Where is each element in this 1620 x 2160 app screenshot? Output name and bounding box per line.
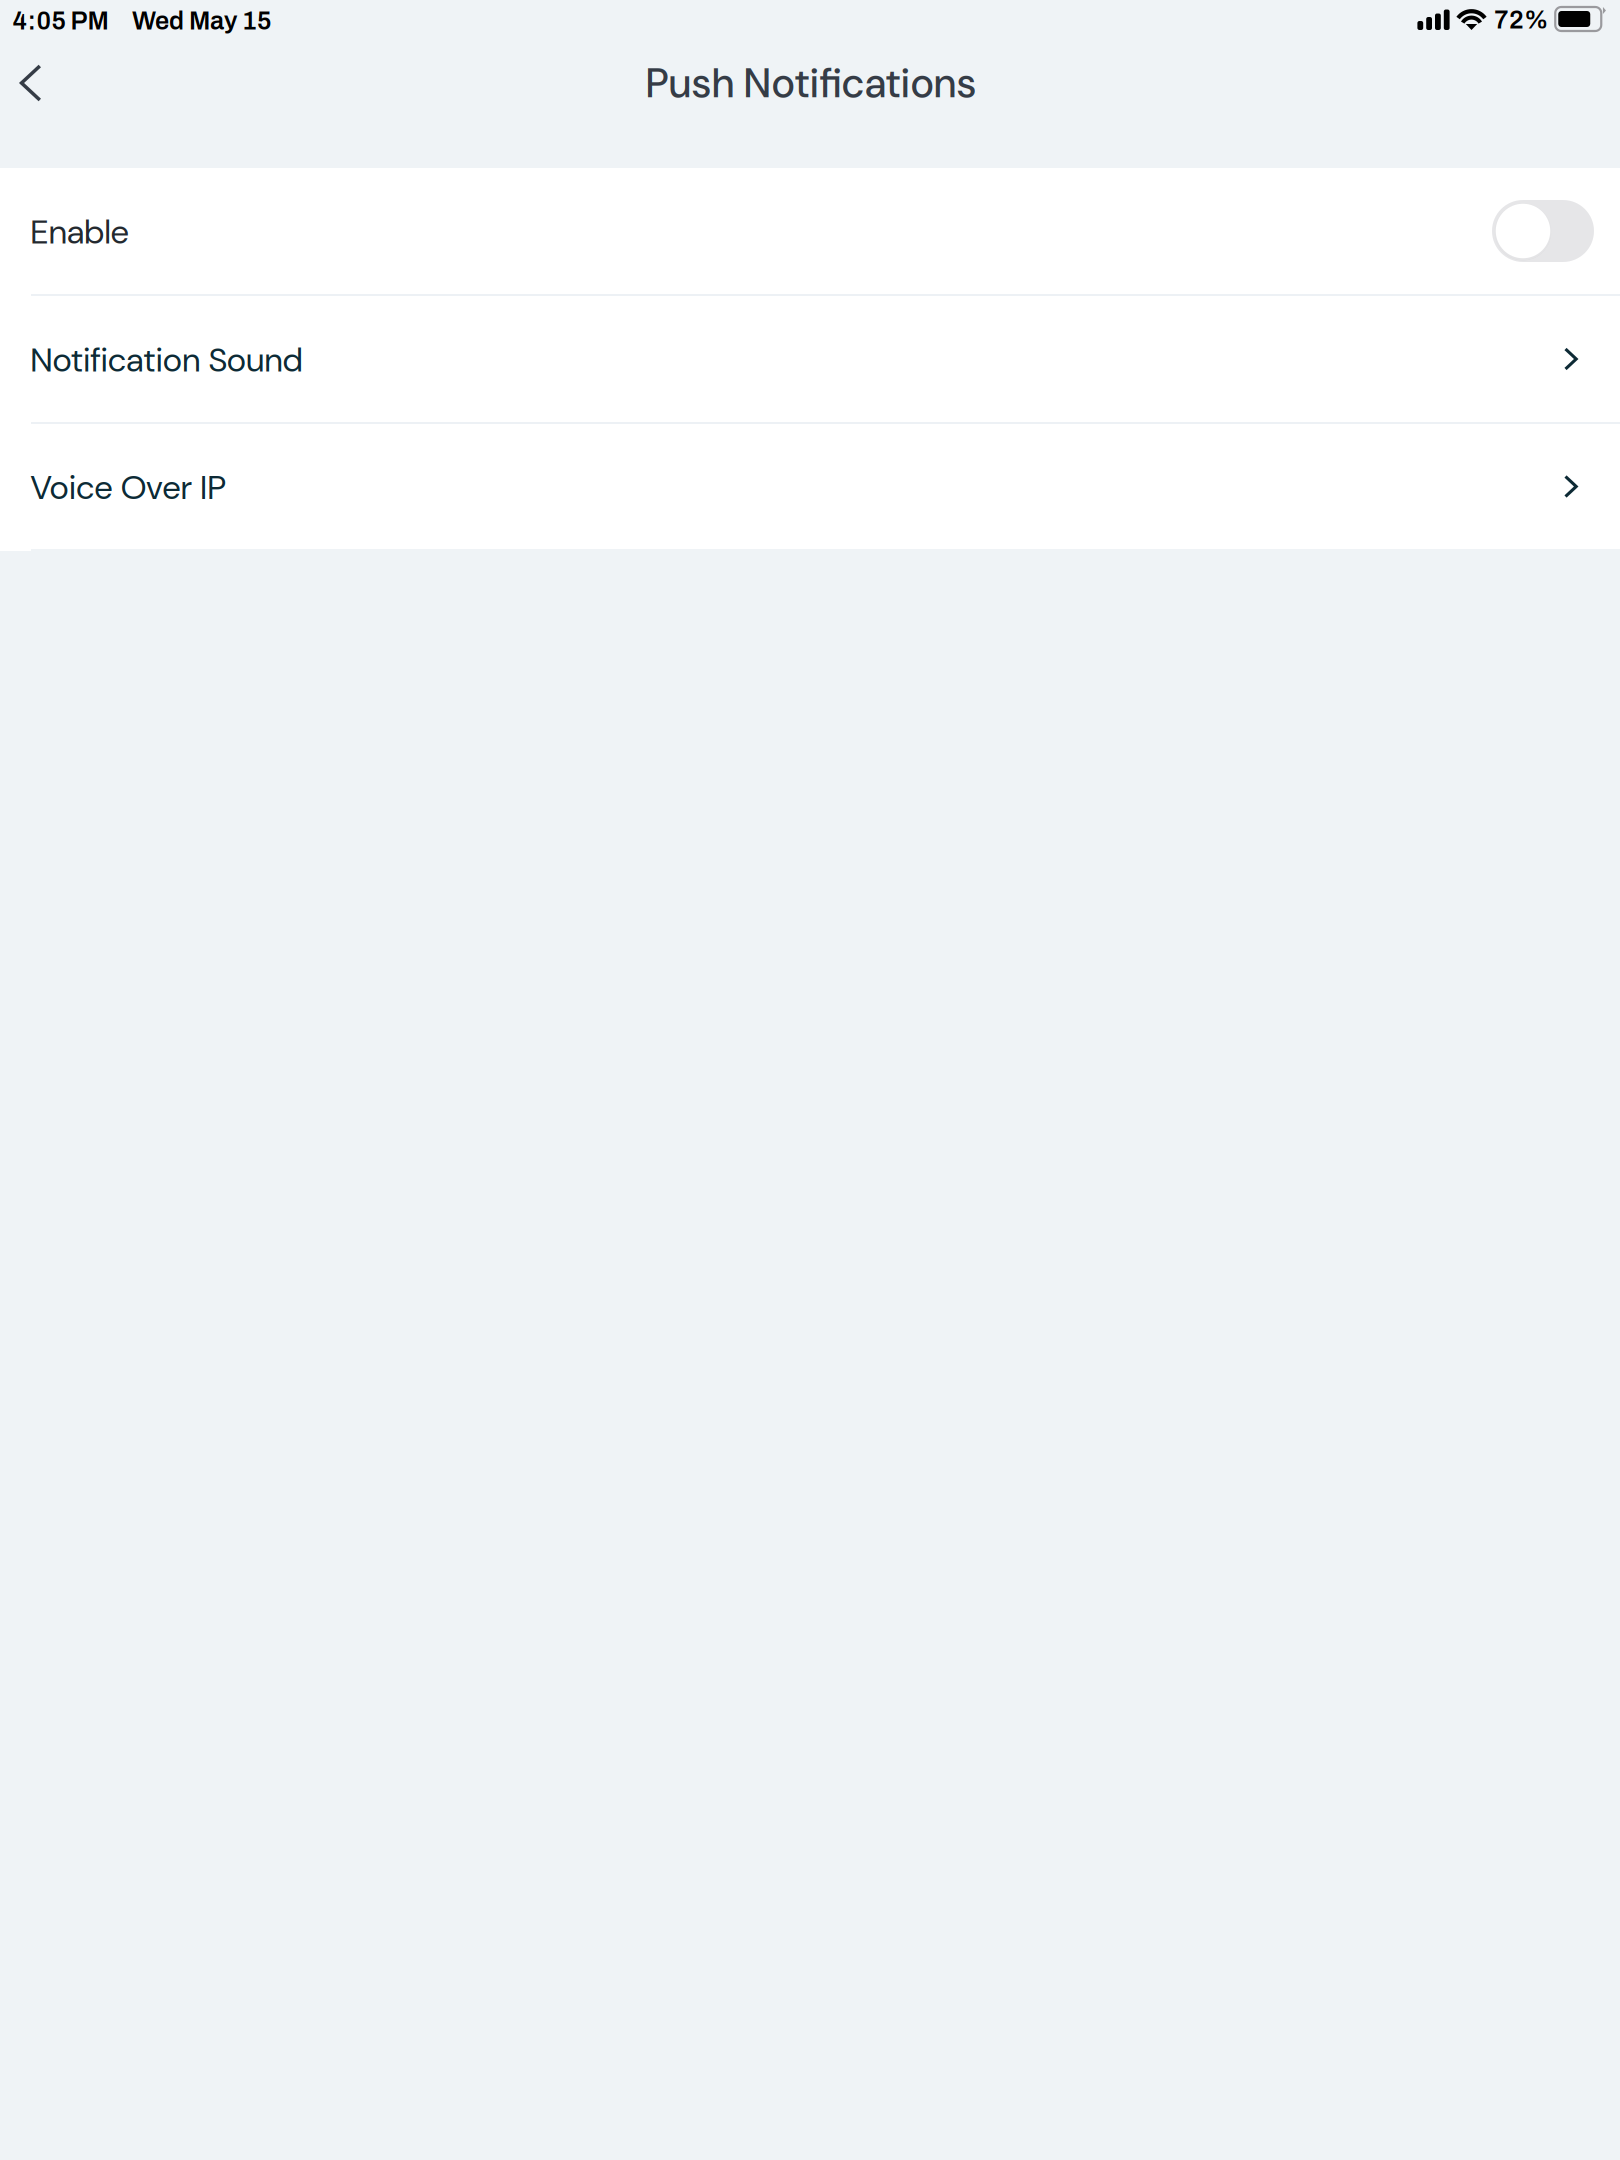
staticText: 4:05: [12, 7, 66, 35]
button[interactable]: Notification Sound: [0, 296, 1620, 422]
button[interactable]: Voice Over IP: [0, 424, 1620, 549]
staticText: PM: [70, 7, 108, 35]
staticText: Voice Over IP: [30, 466, 226, 509]
staticText: Enable: [30, 210, 129, 254]
staticText: Wed May 15: [132, 7, 272, 35]
button[interactable]: Enable: [0, 168, 1620, 294]
staticText: Notification Sound: [30, 338, 303, 382]
staticText: 72%: [1494, 6, 1548, 34]
staticText: Push Notifications: [645, 57, 976, 110]
button[interactable]: Back: [0, 45, 76, 121]
